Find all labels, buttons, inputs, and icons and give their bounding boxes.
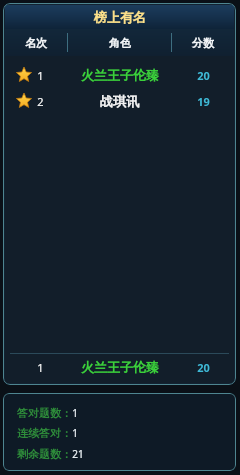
other: Star	[16, 67, 32, 83]
staticText: 火兰王子伦臻	[81, 359, 159, 375]
staticText: 火兰王子伦臻	[81, 67, 159, 83]
staticText: 21	[72, 447, 84, 461]
staticText: 1	[72, 426, 78, 440]
button[interactable]: Star	[5, 62, 234, 88]
staticText: 分数	[192, 36, 214, 50]
staticText: 剩余题数：	[17, 447, 72, 461]
staticText: 战琪讯	[100, 93, 139, 109]
button[interactable]: Star	[5, 88, 234, 114]
staticText: 1	[37, 360, 44, 375]
staticText: 2	[37, 94, 44, 109]
staticText: 1	[37, 68, 44, 83]
other: Star	[16, 93, 32, 109]
staticText: 20	[197, 360, 210, 375]
button[interactable]: 1	[5, 354, 234, 380]
staticText: 榜上有名	[94, 9, 146, 25]
staticText: 名次	[25, 36, 47, 50]
staticText: 答对题数：	[17, 406, 72, 420]
staticText: 19	[197, 94, 210, 109]
staticText: 1	[72, 406, 78, 420]
staticText: 连续答对：	[17, 426, 72, 440]
staticText: 20	[197, 68, 210, 83]
staticText: 角色	[109, 36, 131, 50]
